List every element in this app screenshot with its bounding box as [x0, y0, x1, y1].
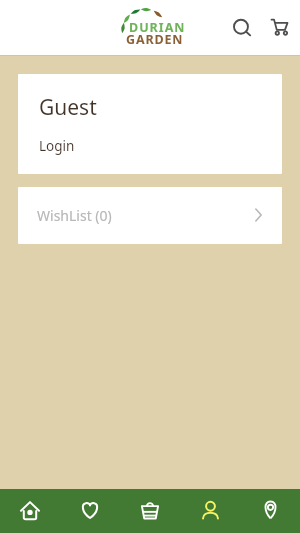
staticText: Login	[39, 137, 75, 155]
staticText: WishList (0)	[37, 206, 112, 225]
staticText: GARDEN	[126, 31, 184, 48]
button[interactable]: WishList (0)	[18, 187, 282, 244]
staticText: DURIAN	[129, 19, 186, 36]
button[interactable]: Basket	[120, 489, 180, 533]
button[interactable]: Wishlist	[60, 489, 120, 533]
button[interactable]: Shopping cart	[261, 9, 297, 45]
button[interactable]: Stores	[240, 489, 300, 533]
button[interactable]: Search	[224, 10, 260, 46]
button[interactable]: Account	[180, 489, 240, 533]
button[interactable]: Durian Garden	[0, 0, 300, 56]
staticText: Guest	[39, 93, 97, 122]
button[interactable]: Home	[0, 489, 60, 533]
button[interactable]: Guest	[18, 74, 282, 174]
